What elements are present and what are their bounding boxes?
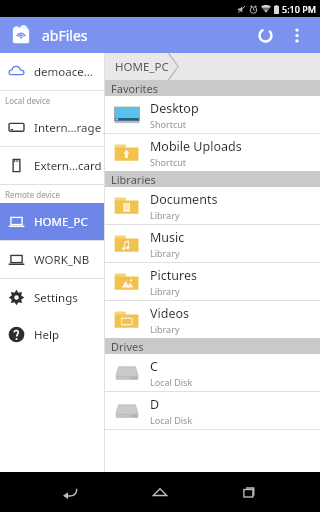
staticText: D: [150, 396, 160, 413]
staticText: Shortcut: [150, 118, 187, 130]
staticText: Extern…card: [34, 158, 102, 174]
button[interactable]: WORK_NB: [0, 241, 104, 278]
staticText: C: [150, 358, 158, 375]
button[interactable]: C: [105, 354, 320, 391]
staticText: Local Disk: [150, 376, 193, 388]
staticText: demoace…: [34, 64, 93, 80]
staticText: Shortcut: [150, 156, 187, 168]
staticText: Library: [150, 209, 180, 221]
button[interactable]: Documents: [105, 187, 320, 224]
button[interactable]: Recents: [230, 472, 270, 512]
staticText: Library: [150, 285, 180, 297]
staticText: HOME_PC: [115, 59, 169, 75]
button[interactable]: HOME_PC: [0, 203, 104, 240]
button[interactable]: Settings: [0, 279, 104, 316]
button[interactable]: Refresh: [250, 20, 280, 50]
staticText: Local device: [5, 95, 51, 106]
button[interactable]: Home: [140, 472, 180, 512]
staticText: Library: [150, 323, 180, 335]
staticText: Intern…rage: [34, 120, 102, 136]
button[interactable]: Music: [105, 225, 320, 262]
staticText: Videos: [150, 305, 190, 322]
staticText: Help: [34, 327, 60, 343]
staticText: Music: [150, 229, 185, 246]
button[interactable]: Videos: [105, 301, 320, 338]
button[interactable]: D: [105, 392, 320, 429]
button[interactable]: Intern…rage: [0, 109, 104, 146]
staticText: HOME_PC: [34, 214, 88, 230]
staticText: WORK_NB: [34, 252, 90, 268]
button[interactable]: Help: [0, 316, 104, 353]
button[interactable]: Extern…card: [0, 147, 104, 184]
staticText: Pictures: [150, 267, 197, 284]
button[interactable]: Mobile Uploads: [105, 134, 320, 171]
button[interactable]: Back: [50, 472, 90, 512]
staticText: Remote device: [5, 189, 61, 200]
staticText: Documents: [150, 191, 218, 208]
staticText: 5:10 PM: [282, 3, 316, 15]
staticText: Settings: [34, 290, 78, 306]
button[interactable]: More options: [284, 22, 310, 48]
staticText: Desktop: [150, 100, 199, 117]
staticText: Favorites: [111, 81, 158, 96]
button[interactable]: Pictures: [105, 263, 320, 300]
staticText: Drives: [111, 339, 144, 354]
button[interactable]: HOME_PC: [105, 53, 320, 80]
staticText: Library: [150, 247, 180, 259]
staticText: Local Disk: [150, 414, 193, 426]
button[interactable]: Desktop: [105, 96, 320, 133]
staticText: abFiles: [42, 26, 88, 45]
staticText: Libraries: [111, 172, 156, 187]
staticText: Mobile Uploads: [150, 138, 242, 155]
button[interactable]: demoace…: [0, 53, 104, 90]
